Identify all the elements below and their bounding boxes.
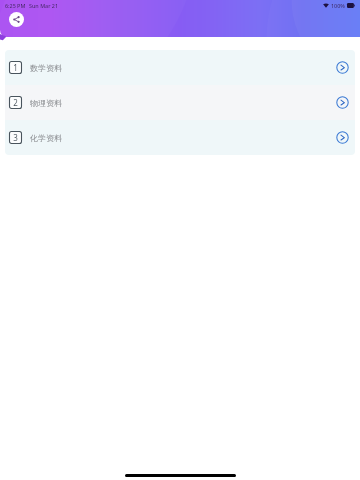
button[interactable]: 2 <box>5 85 355 120</box>
button[interactable]: Open 化学资料 <box>336 131 349 144</box>
staticText: 2 <box>13 97 18 108</box>
staticText: 100% <box>331 2 345 9</box>
button[interactable]: Open 物理资料 <box>336 96 349 109</box>
staticText: 物理资料 <box>30 98 62 108</box>
staticText: 1 <box>13 62 18 73</box>
button[interactable]: Open 数学资料 <box>336 61 349 74</box>
button[interactable]: 3 <box>5 120 355 155</box>
button[interactable]: Share <box>9 12 24 27</box>
staticText: Sun Mar 21 <box>29 2 59 9</box>
staticText: 6:25 PM <box>5 2 26 9</box>
staticText: 化学资料 <box>30 133 62 143</box>
staticText: 数学资料 <box>30 63 62 73</box>
staticText: 3 <box>13 132 18 143</box>
button[interactable]: 1 <box>5 50 355 85</box>
